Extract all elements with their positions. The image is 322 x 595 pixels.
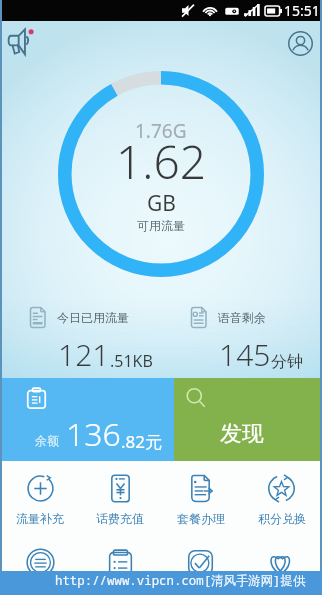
staticText: 发现 [220,420,264,448]
staticText: 话费充值 [96,511,144,526]
staticText: 15:51 [284,1,320,20]
staticText: .82元 [121,430,163,453]
button[interactable]: Shortcut [0,547,80,578]
staticText: 1.62 [116,130,207,193]
staticText: 可用流量 [137,218,185,233]
staticText: 积分兑换 [258,511,306,526]
button[interactable]: 积分兑换 [241,473,322,526]
button[interactable]: 余额 [0,378,174,461]
staticText: 套餐办理 [177,511,225,526]
button[interactable]: 流量补充 [0,473,80,526]
staticText: 121 [58,334,110,375]
staticText: http://www.vipcn.com[清风手游网]提供 [55,572,306,589]
button[interactable]: 语音剩余 [161,303,322,373]
staticText: 分钟 [271,352,303,372]
staticText: 今日已用流量 [57,310,129,325]
button[interactable]: 话费充值 [80,473,160,526]
staticText: .51KB [110,350,153,372]
button[interactable]: 今日已用流量 [0,303,161,373]
button[interactable]: 发现 [174,378,322,461]
button[interactable]: Shortcut [80,547,160,578]
staticText: 145 [219,334,271,375]
staticText: GB [147,189,176,218]
staticText: 流量补充 [16,511,64,526]
staticText: 1.76G [135,118,187,144]
staticText: 136 [66,412,121,456]
button[interactable]: Shortcut [160,547,241,578]
button[interactable]: Announcements [6,26,40,60]
button[interactable]: 套餐办理 [160,473,241,526]
button[interactable]: Account [284,27,316,59]
button[interactable]: Shortcut [241,547,322,578]
staticText: 余额 [35,433,59,448]
staticText: 语音剩余 [218,310,266,325]
